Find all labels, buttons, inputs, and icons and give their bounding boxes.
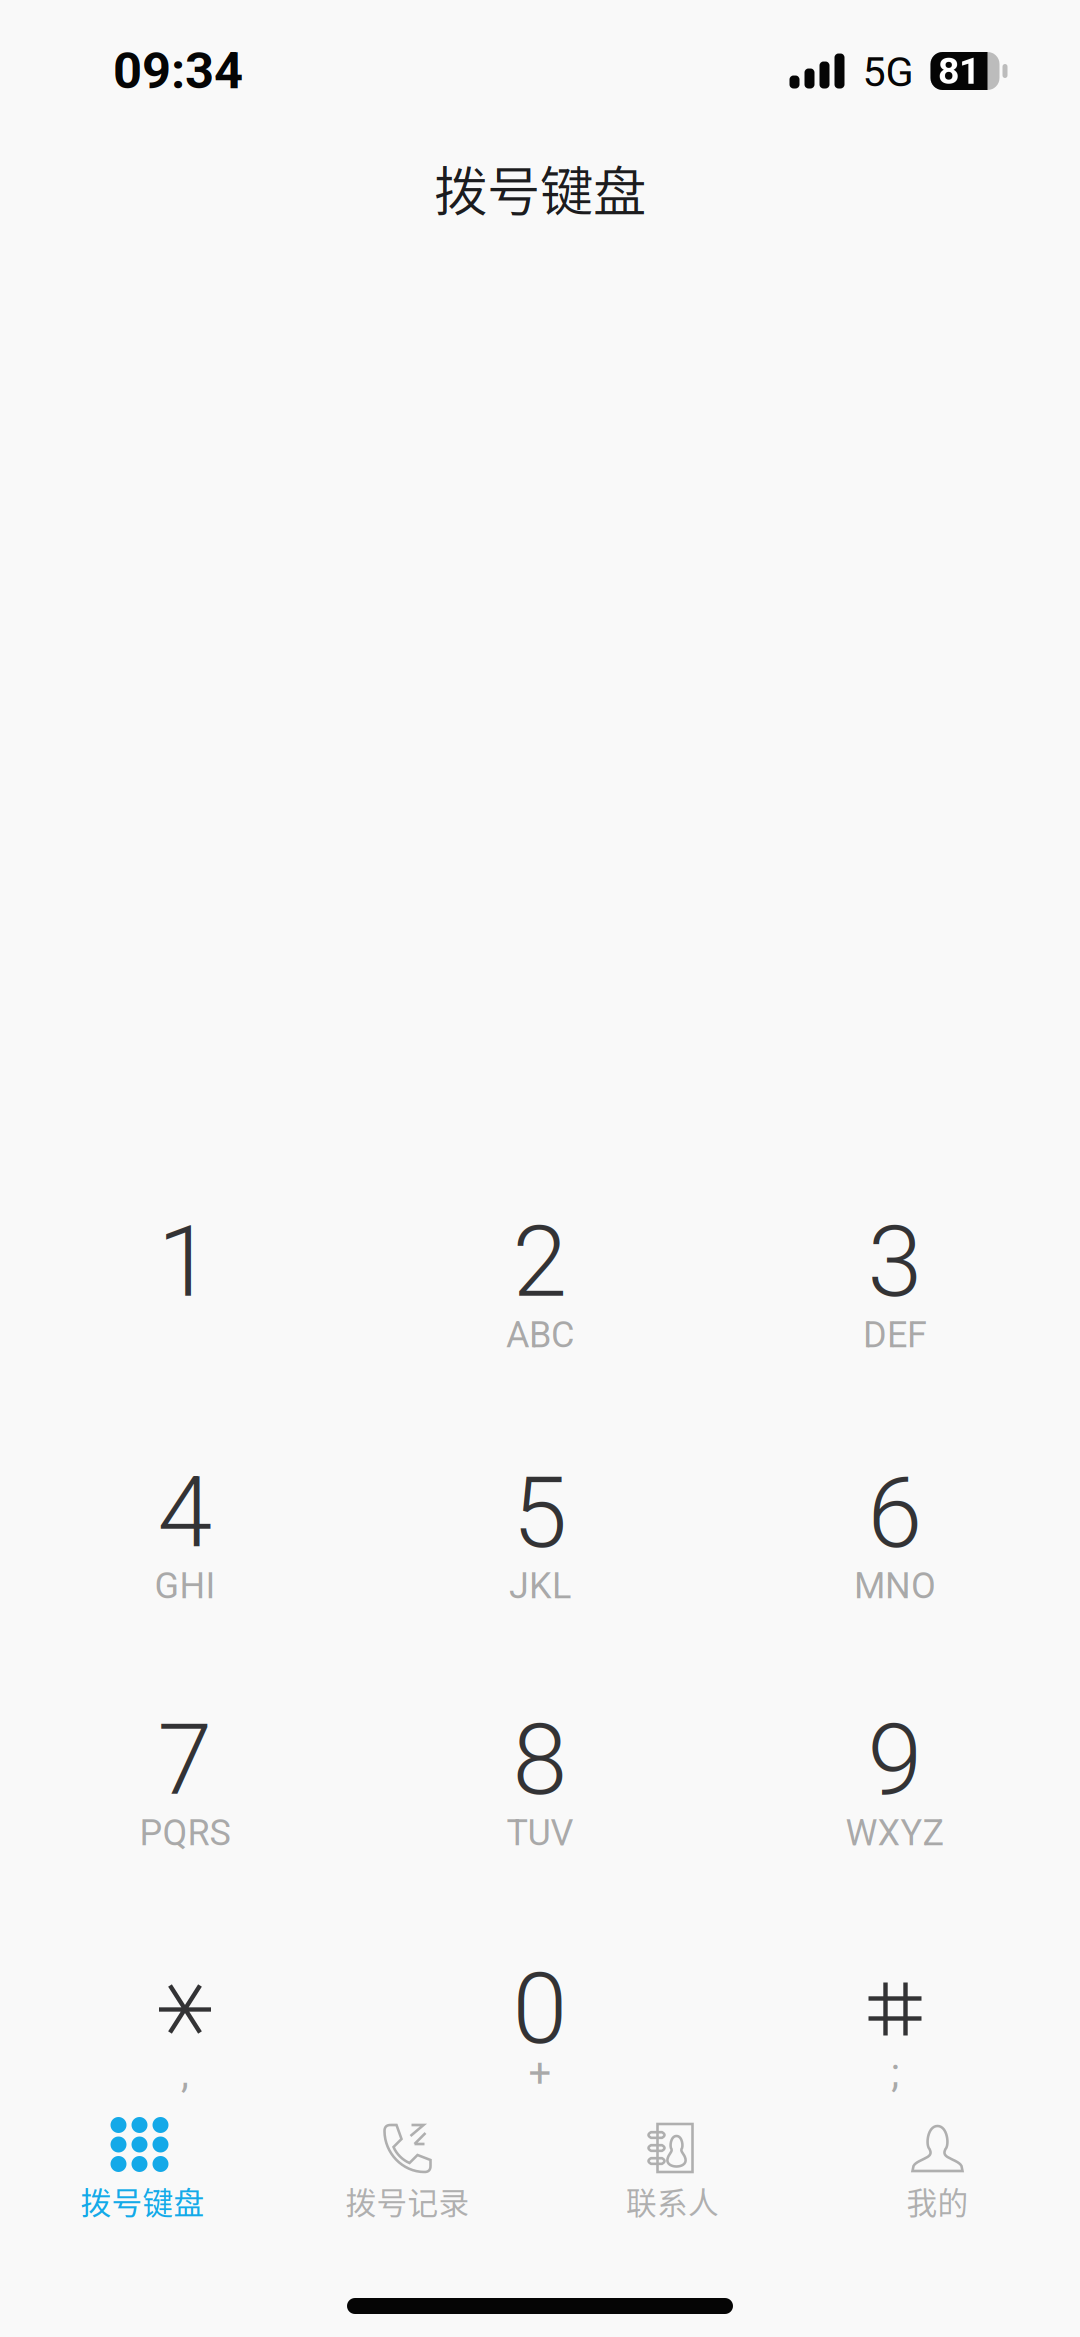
button[interactable]: 1 <box>7 1214 362 1360</box>
button[interactable]: 0 + <box>362 1961 717 2107</box>
button[interactable]: 8 TUV <box>362 1712 717 1858</box>
button[interactable]: 井号 <box>717 1961 1072 2107</box>
button[interactable]: 我的 <box>805 2119 1070 2225</box>
staticText: MNO <box>854 1565 936 1607</box>
staticText: GHI <box>154 1565 215 1607</box>
staticText: 拨号记录 <box>345 2179 469 2223</box>
button[interactable]: 星号 <box>7 1961 362 2107</box>
staticText: 3 <box>867 1204 922 1320</box>
staticText: 8 <box>512 1702 567 1818</box>
staticText: 2 <box>512 1204 567 1320</box>
button[interactable]: 3 DEF <box>717 1214 1072 1360</box>
staticText: 0 <box>512 1951 567 2067</box>
staticText: DEF <box>863 1314 927 1356</box>
staticText: ABC <box>506 1314 574 1356</box>
staticText: 我的 <box>906 2179 968 2223</box>
staticText: 联系人 <box>626 2179 719 2223</box>
staticText: 5G <box>862 48 913 96</box>
button[interactable]: 6 MNO <box>717 1465 1072 1611</box>
button[interactable]: 5 JKL <box>362 1465 717 1611</box>
staticText: JKL <box>509 1565 571 1607</box>
staticText: 5 <box>512 1455 567 1571</box>
staticText: 9 <box>867 1702 922 1818</box>
staticText: ; <box>891 2050 899 2096</box>
staticText: 7 <box>157 1702 212 1818</box>
button[interactable]: 拨号键盘 <box>10 2119 275 2225</box>
button[interactable]: 联系人 <box>540 2119 805 2225</box>
staticText: WXYZ <box>845 1812 944 1854</box>
staticText: 拨号键盘 <box>80 2179 204 2223</box>
staticText: 6 <box>867 1455 922 1571</box>
button[interactable]: 7 PQRS <box>7 1712 362 1858</box>
button[interactable]: 拨号记录 <box>275 2119 540 2225</box>
staticText: 09:34 <box>113 41 243 101</box>
staticText: PQRS <box>139 1812 230 1854</box>
staticText: 1 <box>157 1204 212 1320</box>
button[interactable]: 2 ABC <box>362 1214 717 1360</box>
staticText: TUV <box>506 1812 573 1854</box>
button[interactable]: 4 GHI <box>7 1465 362 1611</box>
staticText: , <box>181 2050 189 2096</box>
staticText: 81 <box>938 49 980 93</box>
button[interactable]: 9 WXYZ <box>717 1712 1072 1858</box>
staticText: 拨号键盘 <box>434 149 646 227</box>
staticText: + <box>528 2050 551 2096</box>
staticText: 4 <box>157 1455 212 1571</box>
